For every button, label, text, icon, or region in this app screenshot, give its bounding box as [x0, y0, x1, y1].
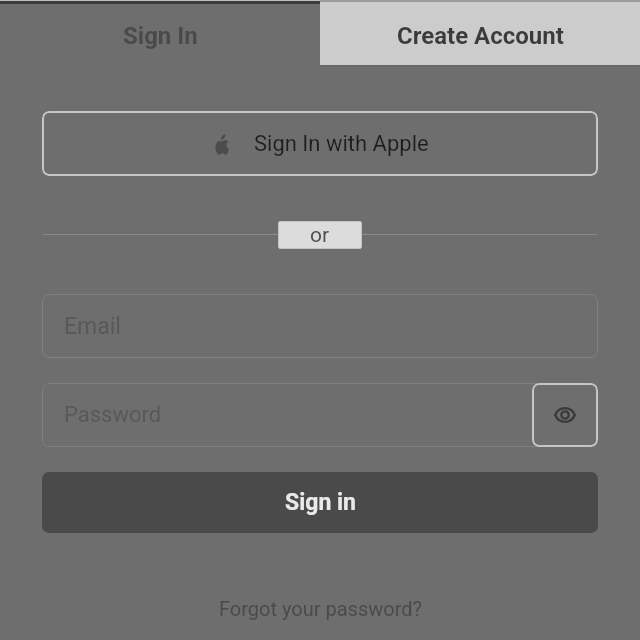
staticText: Create Account — [397, 22, 564, 50]
staticText: Sign In — [123, 22, 198, 50]
button[interactable]: Sign In — [0, 0, 320, 65]
staticText: Forgot your password? — [219, 597, 422, 620]
button[interactable]: Show password — [532, 383, 598, 447]
staticText: Sign in — [285, 489, 356, 516]
button[interactable]: Password — [42, 383, 598, 447]
button[interactable]: Sign in — [42, 472, 598, 533]
staticText: Password — [64, 402, 162, 428]
button[interactable]: Forgot your password? — [209, 591, 432, 626]
button[interactable]: Create Account — [320, 0, 640, 65]
staticText: or — [310, 223, 330, 248]
button[interactable]: Sign In with Apple — [42, 111, 598, 176]
button[interactable]: Email — [42, 294, 598, 358]
staticText: Email — [64, 313, 121, 340]
staticText: Sign In with Apple — [254, 131, 429, 157]
